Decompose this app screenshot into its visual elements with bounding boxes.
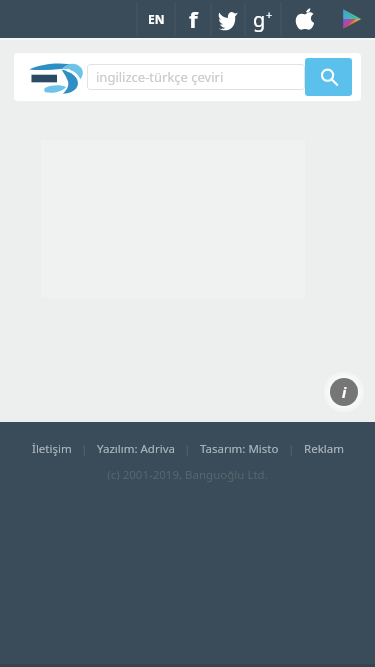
- staticText: Tasarım: Misto: [200, 441, 279, 457]
- staticText: +: [266, 7, 273, 22]
- staticText: |: [288, 441, 295, 457]
- button[interactable]: Zargan home: [28, 58, 86, 96]
- staticText: (c) 2001-2019, Banguoğlu Ltd.: [107, 467, 268, 483]
- button[interactable]: ingilizce-türkçe çeviri: [87, 64, 305, 90]
- button[interactable]: Google Plus: [245, 0, 281, 38]
- button[interactable]: Facebook: [175, 0, 211, 38]
- button[interactable]: App Store: [281, 0, 328, 38]
- staticText: f: [189, 4, 198, 34]
- button[interactable]: Google Play: [328, 0, 375, 38]
- staticText: |: [81, 441, 88, 457]
- staticText: |: [184, 441, 191, 457]
- staticText: Yazılım: Adriva: [97, 441, 175, 457]
- button[interactable]: Tasarım: Misto: [197, 439, 282, 459]
- staticText: i: [342, 383, 347, 402]
- staticText: Reklam: [304, 441, 344, 457]
- button[interactable]: İletişim: [29, 439, 75, 459]
- button[interactable]: Twitter: [211, 0, 245, 38]
- button[interactable]: Search: [305, 58, 352, 96]
- button[interactable]: Information: [324, 372, 364, 412]
- button[interactable]: EN: [137, 0, 175, 38]
- button[interactable]: Reklam: [301, 439, 347, 459]
- staticText: İletişim: [32, 441, 72, 457]
- staticText: EN: [148, 11, 165, 27]
- staticText: ingilizce-türkçe çeviri: [96, 68, 224, 86]
- button[interactable]: Yazılım: Adriva: [94, 439, 178, 459]
- staticText: g: [253, 6, 266, 33]
